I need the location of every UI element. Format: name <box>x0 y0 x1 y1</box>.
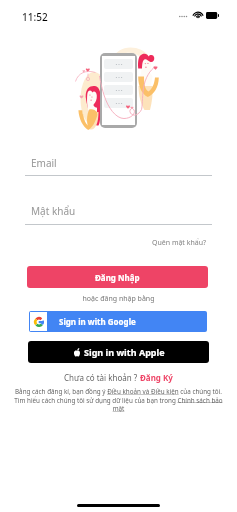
button[interactable]: Quên mật khẩu? <box>152 238 207 248</box>
button[interactable]: Đăng Nhập <box>27 266 208 288</box>
staticText: hoặc đăng nhập bằng <box>0 294 237 304</box>
staticText: Đăng Nhập <box>95 272 140 283</box>
staticText: Quên mật khẩu? <box>152 238 207 248</box>
staticText: 11:52 <box>22 10 48 24</box>
button[interactable]: Đăng Ký <box>140 372 173 383</box>
staticText: Chưa có tài khoản ? <box>64 372 140 383</box>
button[interactable]: Sign in with Apple <box>28 341 209 363</box>
staticText: Email <box>31 156 57 170</box>
staticText: Sign in with Google <box>59 316 136 327</box>
staticText: Sign in with Apple <box>84 346 165 358</box>
button[interactable]: Sign in with Google <box>29 311 207 332</box>
staticText: Mật khẩu <box>31 204 76 218</box>
staticText: Bằng cách đăng kí, bạn đồng ý Điều khoản… <box>8 387 229 413</box>
